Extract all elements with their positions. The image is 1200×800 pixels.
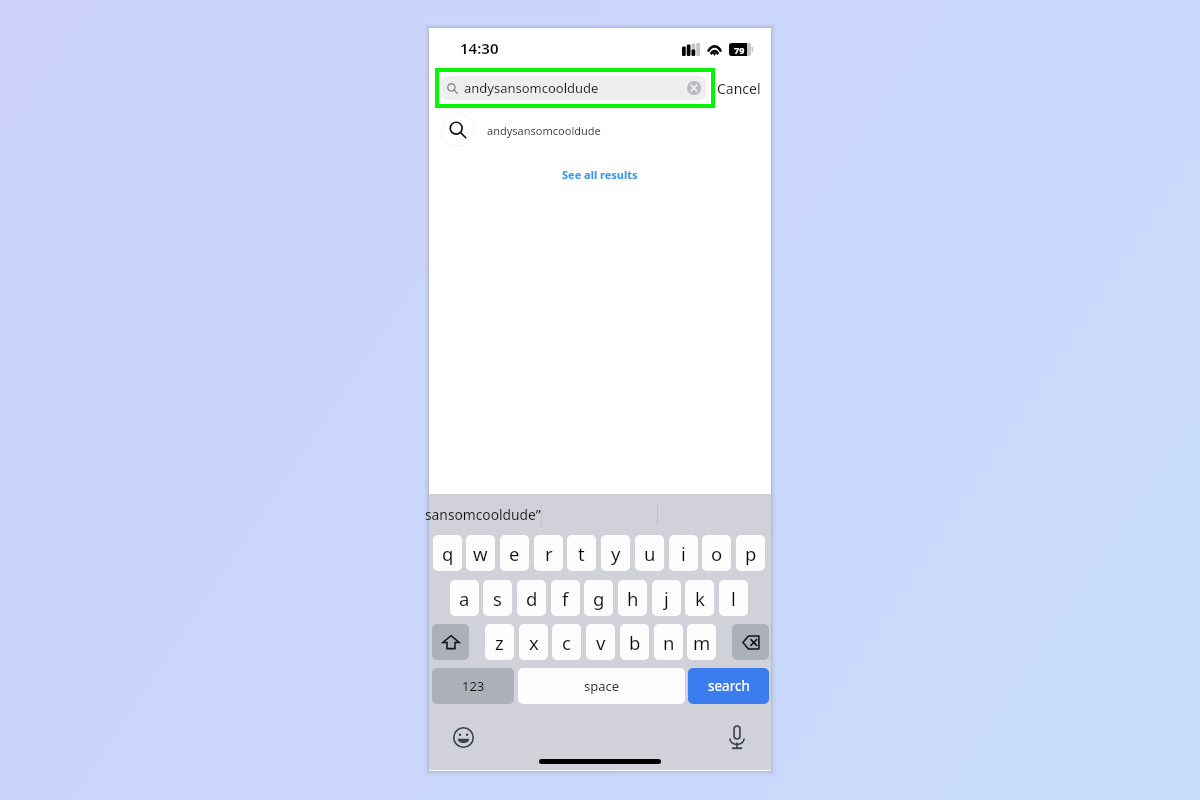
staticText: e (509, 541, 520, 566)
button[interactable]: 123 (432, 668, 514, 704)
staticText: m (693, 630, 711, 655)
other: Clear (687, 81, 701, 95)
button[interactable]: q (433, 535, 462, 571)
staticText: r (545, 541, 553, 566)
button[interactable]: Voice input (719, 718, 755, 756)
staticText: c (562, 630, 571, 655)
staticText: 123 (462, 677, 485, 695)
staticText: y (611, 541, 621, 566)
staticText: s (493, 586, 502, 611)
button[interactable]: p (736, 535, 765, 571)
button[interactable]: u (635, 535, 664, 571)
staticText: w (473, 541, 488, 566)
button[interactable]: o (702, 535, 731, 571)
staticText: h (627, 586, 639, 611)
button[interactable]: k (685, 580, 714, 616)
button[interactable]: a (450, 580, 479, 616)
button[interactable]: j (652, 580, 681, 616)
staticText: search (708, 677, 750, 695)
staticText: z (495, 630, 504, 655)
button[interactable]: Cancel (710, 73, 771, 104)
staticText: g (593, 586, 605, 611)
button[interactable]: y (601, 535, 630, 571)
staticText: n (663, 630, 675, 655)
staticText: i (681, 541, 686, 566)
button[interactable]: f (551, 580, 580, 616)
button[interactable]: w (466, 535, 495, 571)
button[interactable]: x (519, 624, 548, 660)
button[interactable]: s (483, 580, 512, 616)
button[interactable]: b (620, 624, 649, 660)
staticText: v (596, 630, 606, 655)
button[interactable]: See all results (429, 156, 771, 192)
staticText: 79 (734, 44, 745, 56)
staticText: t (578, 541, 585, 566)
staticText: k (695, 586, 705, 611)
button[interactable]: space (518, 668, 685, 704)
button[interactable]: andysansomcooldude (441, 76, 706, 100)
button[interactable]: l (719, 580, 748, 616)
button[interactable]: h (618, 580, 647, 616)
staticText: f (562, 586, 569, 611)
staticText: Cancel (717, 79, 761, 98)
button[interactable]: i (669, 535, 698, 571)
button[interactable]: c (552, 624, 581, 660)
button[interactable]: Backspace (732, 624, 769, 660)
button[interactable]: andysansomcooldude (429, 111, 771, 149)
staticText: q (442, 541, 454, 566)
staticText: j (664, 586, 669, 611)
button[interactable]: e (500, 535, 529, 571)
staticText: 14:30 (460, 38, 499, 58)
button[interactable]: z (485, 624, 514, 660)
button[interactable]: d (517, 580, 546, 616)
button[interactable]: v (586, 624, 615, 660)
button[interactable]: r (534, 535, 563, 571)
staticText: space (584, 677, 620, 695)
staticText: p (745, 541, 757, 566)
staticText: a (459, 586, 470, 611)
staticText: See all results (562, 167, 638, 182)
button[interactable]: search (688, 668, 769, 704)
staticText: d (526, 586, 538, 611)
button[interactable]: m (687, 624, 716, 660)
staticText: l (731, 586, 736, 611)
staticText: u (644, 541, 656, 566)
button[interactable]: t (567, 535, 596, 571)
button[interactable]: Emoji (446, 720, 481, 755)
button[interactable]: g (584, 580, 613, 616)
staticText: andysansomcooldude (487, 123, 601, 138)
staticText: b (629, 630, 641, 655)
staticText: x (529, 630, 539, 655)
staticText: andysansomcooldude (464, 79, 687, 97)
button[interactable]: n (654, 624, 683, 660)
staticText: sansomcooldude” (425, 505, 541, 524)
staticText: o (711, 541, 723, 566)
button[interactable]: Shift (432, 624, 469, 660)
